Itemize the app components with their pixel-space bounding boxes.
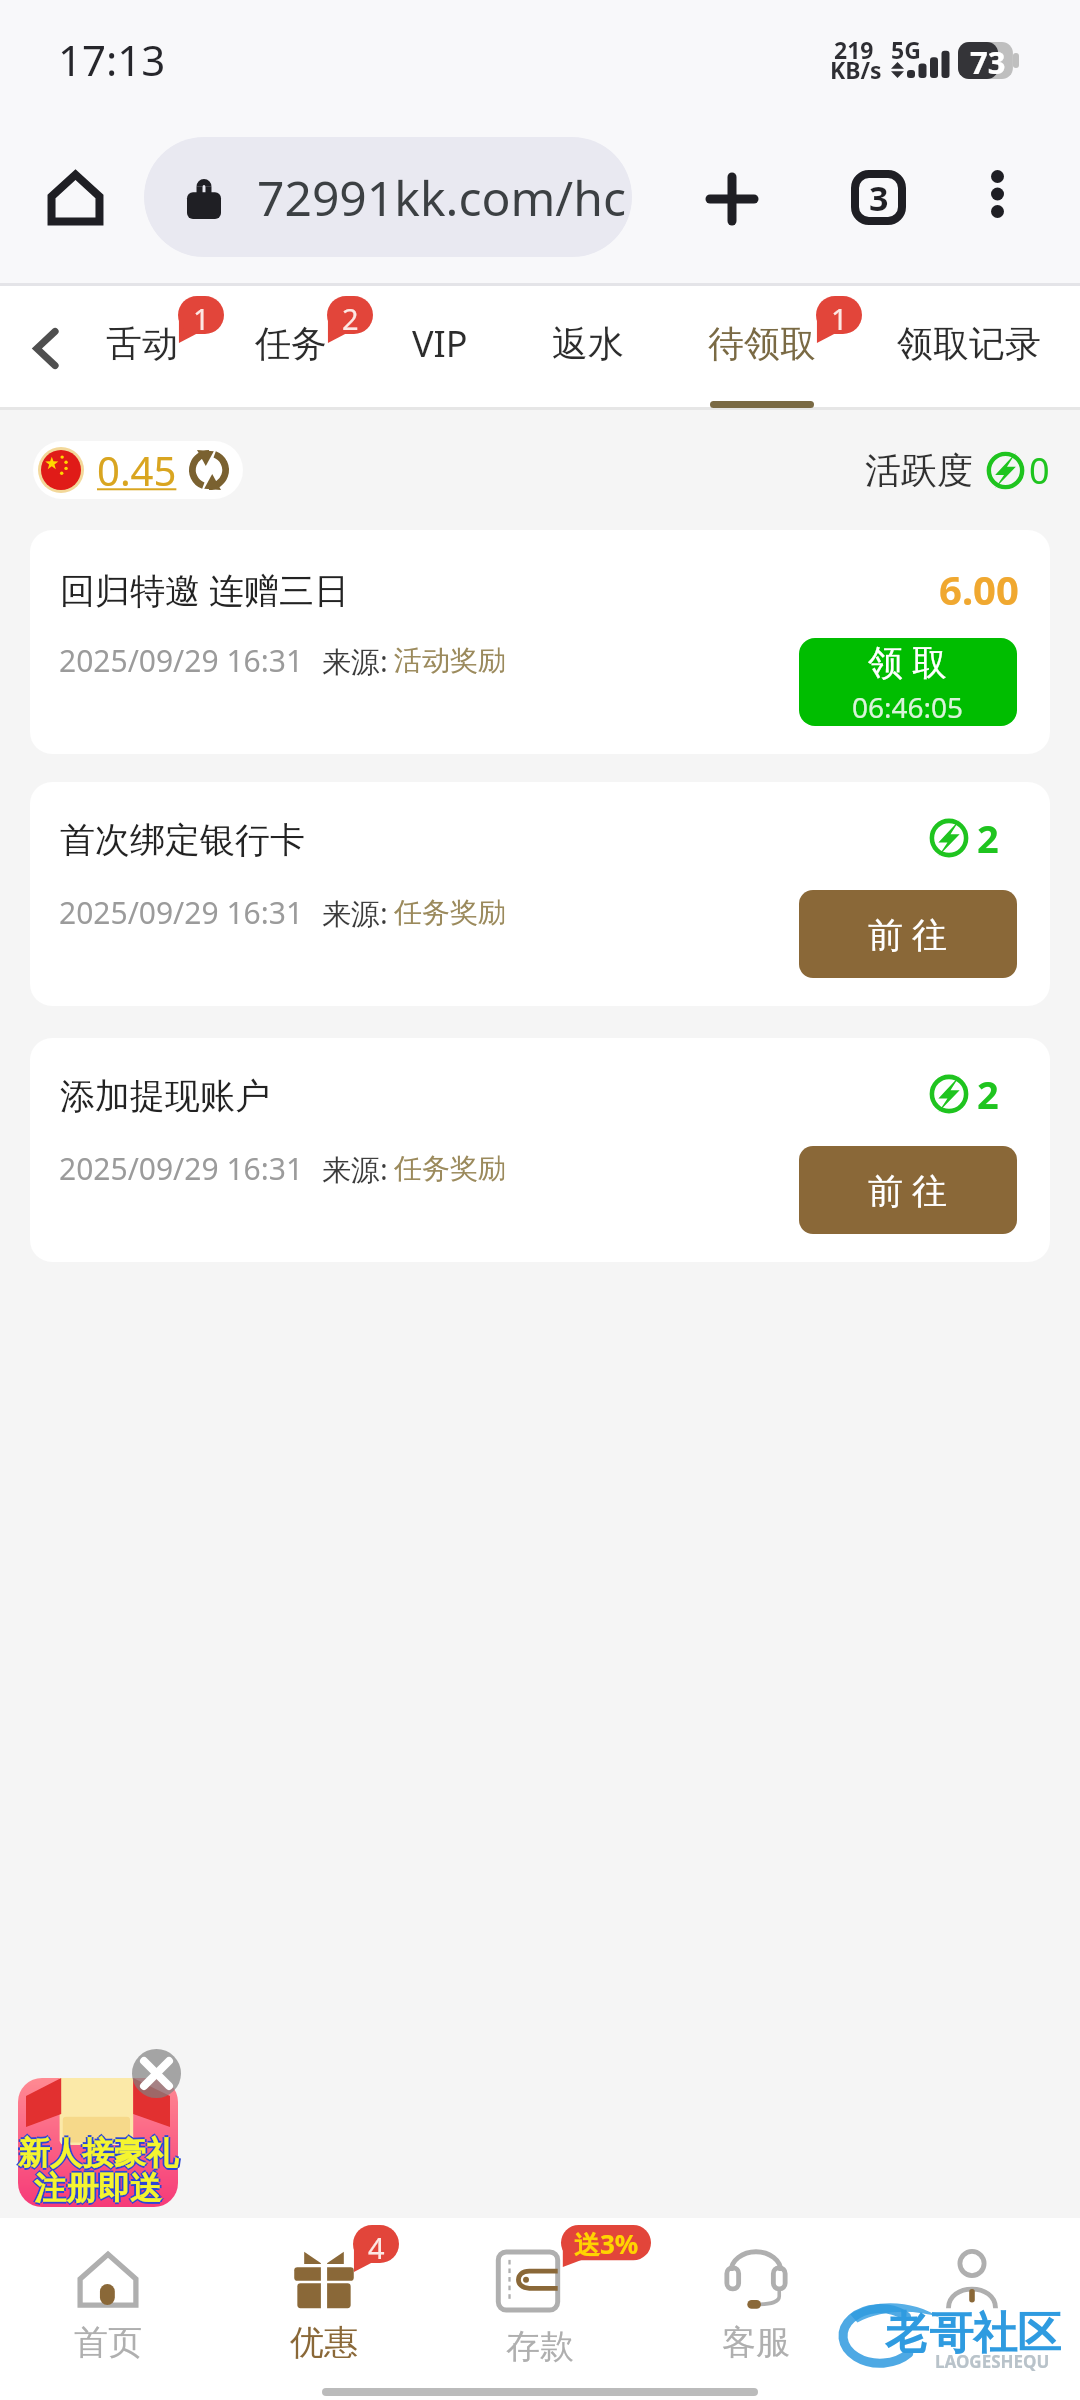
staticText: 任务 xyxy=(255,321,327,366)
staticText: 5G xyxy=(891,34,921,65)
staticText: LAOGESHEQU xyxy=(935,2350,1050,2373)
button[interactable]: Close xyxy=(132,2049,181,2098)
button[interactable]: 首次绑定银行卡 xyxy=(30,782,1050,1006)
button[interactable]: More options xyxy=(955,152,1039,236)
staticText: 4 xyxy=(368,2228,385,2267)
staticText: 前 往 xyxy=(868,910,948,958)
staticText: 活动奖励 xyxy=(394,643,506,678)
staticText: 来源: xyxy=(322,1149,388,1189)
staticText: 任务奖励 xyxy=(394,1151,506,1186)
button[interactable]: 4 xyxy=(216,2218,432,2364)
staticText: 新人接豪礼 xyxy=(18,2131,178,2171)
staticText: 待领取 xyxy=(708,321,816,366)
staticText: 2 xyxy=(977,812,999,864)
button[interactable]: VIP xyxy=(375,286,505,410)
button[interactable]: Home xyxy=(30,153,120,243)
staticText: 6.00 xyxy=(939,562,1019,616)
staticText: 送3% xyxy=(574,2226,639,2262)
staticText: 客服 xyxy=(722,2321,790,2364)
staticText: 3 xyxy=(869,175,889,221)
button[interactable]: 添加提现账户 xyxy=(30,1038,1050,1262)
staticText: 2025/09/29 16:31 xyxy=(59,892,304,933)
button[interactable]: 首页 xyxy=(0,2218,216,2364)
staticText: 存款 xyxy=(506,2325,574,2368)
staticText: 新人接豪礼 xyxy=(18,2133,178,2173)
staticText: KB/s xyxy=(830,54,882,85)
staticText: 优惠 xyxy=(290,2321,358,2364)
staticText: 注册即送 xyxy=(34,2168,162,2208)
staticText: 老哥社区 xyxy=(885,2306,1061,2361)
button[interactable]: 任务 xyxy=(243,286,339,410)
button[interactable]: 领 取 xyxy=(799,638,1017,726)
staticText: 前 往 xyxy=(868,1166,948,1214)
button[interactable]: 0.45 xyxy=(33,441,243,499)
button[interactable]: 前 往 xyxy=(799,890,1017,978)
staticText: 新人接豪礼 xyxy=(20,2133,180,2173)
staticText: 首次绑定银行卡 xyxy=(60,818,305,862)
staticText: 2 xyxy=(342,299,359,338)
staticText: 注册即送 xyxy=(36,2168,164,2208)
button[interactable]: 送3% xyxy=(432,2218,648,2368)
button[interactable]: 舌动 xyxy=(94,286,190,410)
staticText: 0.45 xyxy=(97,443,177,497)
staticText: 73 xyxy=(970,41,1006,78)
staticText: 注册即送 xyxy=(32,2168,160,2208)
button[interactable] xyxy=(864,2218,1080,2321)
staticText: 0 xyxy=(1029,446,1050,495)
button[interactable]: 领取记录 xyxy=(887,286,1051,410)
staticText: 注册即送 xyxy=(34,2166,162,2206)
staticText: 来源: xyxy=(322,893,388,933)
button[interactable]: 回归特邀 连赠三日 xyxy=(30,530,1050,754)
staticText: 新人接豪礼 xyxy=(16,2133,176,2173)
button[interactable]: Promotion xyxy=(18,2078,178,2207)
button[interactable]: 待领取 xyxy=(697,286,827,410)
button[interactable]: Back xyxy=(22,286,70,410)
staticText: 领取记录 xyxy=(897,321,1041,366)
staticText: 领 取 xyxy=(868,638,948,686)
staticText: 注册即送 xyxy=(34,2170,162,2210)
button[interactable]: 前 往 xyxy=(799,1146,1017,1234)
staticText: 来源: xyxy=(322,641,388,681)
staticText: 1 xyxy=(193,299,210,338)
staticText: 1 xyxy=(831,299,848,338)
staticText: 72991kk.com/hc xyxy=(257,165,626,230)
button[interactable]: New tab xyxy=(687,154,777,244)
button[interactable]: Tabs xyxy=(833,152,923,242)
staticText: 17:13 xyxy=(58,31,166,88)
staticText: 舌动 xyxy=(106,321,178,366)
button[interactable]: 72991kk.com/hc xyxy=(144,137,632,257)
staticText: 2 xyxy=(977,1068,999,1120)
button[interactable]: 返水 xyxy=(540,286,636,410)
staticText: 06:46:05 xyxy=(852,688,964,726)
staticText: 任务奖励 xyxy=(394,895,506,930)
staticText: 新人接豪礼 xyxy=(18,2135,178,2175)
staticText: 首页 xyxy=(74,2321,142,2364)
staticText: 添加提现账户 xyxy=(60,1074,270,1118)
staticText: 219 xyxy=(834,34,874,65)
staticText: 活跃度 xyxy=(865,448,973,493)
button[interactable]: 客服 xyxy=(648,2218,864,2364)
staticText: 返水 xyxy=(552,321,624,366)
staticText: 2025/09/29 16:31 xyxy=(59,1148,304,1189)
staticText: 回归特邀 连赠三日 xyxy=(60,566,350,614)
staticText: VIP xyxy=(412,319,468,368)
staticText: 2025/09/29 16:31 xyxy=(59,640,304,681)
